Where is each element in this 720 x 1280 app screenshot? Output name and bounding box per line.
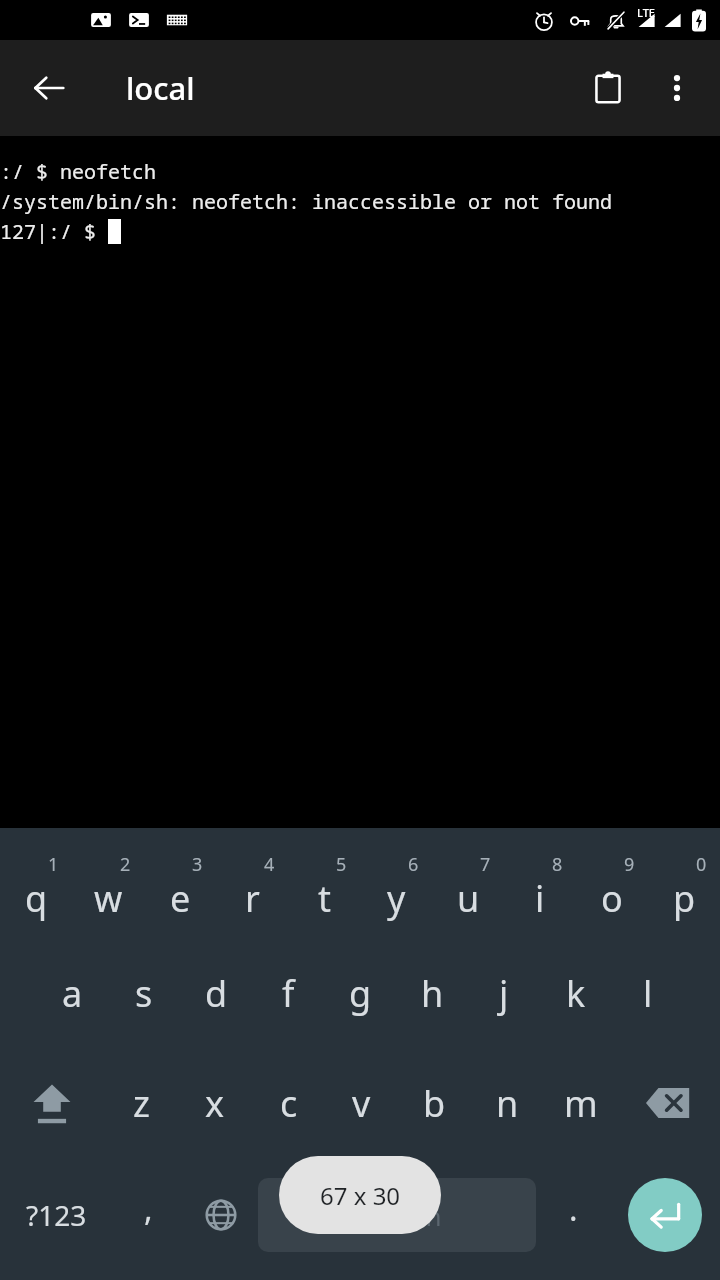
button[interactable]: ?123 bbox=[0, 1158, 112, 1272]
button[interactable]: z bbox=[104, 1048, 178, 1158]
button[interactable]: 7 bbox=[432, 842, 504, 938]
staticText: c bbox=[280, 1079, 298, 1128]
staticText: LTE bbox=[637, 5, 655, 20]
button[interactable]: More options bbox=[646, 57, 708, 119]
staticText: p bbox=[673, 874, 696, 923]
staticText: t bbox=[318, 874, 331, 923]
staticText: k bbox=[566, 969, 586, 1018]
staticText: y bbox=[387, 874, 406, 923]
button[interactable]: 3 bbox=[144, 842, 216, 938]
button[interactable]: 5 bbox=[288, 842, 360, 938]
staticText: v bbox=[352, 1079, 371, 1128]
staticText: a bbox=[62, 969, 83, 1018]
button[interactable]: English bbox=[258, 1178, 536, 1252]
staticText: n bbox=[496, 1079, 519, 1128]
button[interactable]: Shift bbox=[0, 1048, 104, 1158]
button[interactable]: c bbox=[252, 1048, 325, 1158]
button[interactable]: 9 bbox=[576, 842, 648, 938]
button[interactable]: Change language bbox=[184, 1158, 258, 1272]
button[interactable]: j bbox=[468, 938, 540, 1048]
staticText: m bbox=[564, 1079, 598, 1128]
button[interactable]: 2 bbox=[72, 842, 144, 938]
staticText: 127|:/ $ bbox=[0, 218, 108, 245]
staticText: 8 bbox=[552, 852, 563, 877]
staticText: o bbox=[601, 874, 623, 923]
staticText: 3 bbox=[192, 852, 203, 877]
button[interactable]: 1 bbox=[0, 842, 72, 938]
button[interactable]: . bbox=[536, 1158, 610, 1272]
staticText: r bbox=[245, 874, 260, 923]
button[interactable]: v bbox=[325, 1048, 398, 1158]
button[interactable]: m bbox=[544, 1048, 617, 1158]
staticText: h bbox=[421, 969, 444, 1018]
staticText: . bbox=[569, 1187, 578, 1231]
staticText: , bbox=[144, 1187, 153, 1231]
button[interactable]: 0 bbox=[648, 842, 720, 938]
button[interactable]: x bbox=[178, 1048, 252, 1158]
staticText: 1 bbox=[48, 852, 59, 877]
staticText: u bbox=[457, 874, 480, 923]
staticText: f bbox=[282, 969, 295, 1018]
button[interactable]: 8 bbox=[504, 842, 576, 938]
staticText: 7 bbox=[480, 852, 491, 877]
button[interactable]: h bbox=[396, 938, 468, 1048]
button[interactable]: s bbox=[108, 938, 180, 1048]
button[interactable]: l bbox=[612, 938, 684, 1048]
button[interactable]: k bbox=[540, 938, 612, 1048]
staticText: q bbox=[25, 874, 48, 923]
button[interactable]: g bbox=[324, 938, 396, 1048]
button[interactable]: Enter bbox=[610, 1158, 720, 1272]
staticText: l bbox=[643, 969, 653, 1018]
staticText: z bbox=[133, 1079, 150, 1128]
staticText: s bbox=[135, 969, 153, 1018]
button[interactable]: Back bbox=[18, 57, 80, 119]
staticText: 6 bbox=[408, 852, 419, 877]
staticText: x bbox=[205, 1079, 225, 1128]
staticText: 4 bbox=[264, 852, 275, 877]
button[interactable]: n bbox=[471, 1048, 544, 1158]
staticText: 2 bbox=[120, 852, 131, 877]
staticText: 0 bbox=[696, 852, 707, 877]
button[interactable]: Paste from clipboard bbox=[576, 56, 640, 120]
staticText: i bbox=[535, 874, 545, 923]
staticText: e bbox=[170, 874, 191, 923]
button[interactable]: 6 bbox=[360, 842, 432, 938]
staticText: 9 bbox=[624, 852, 635, 877]
staticText: 5 bbox=[336, 852, 347, 877]
button[interactable]: Backspace bbox=[617, 1048, 720, 1158]
button[interactable]: 4 bbox=[216, 842, 288, 938]
staticText: b bbox=[423, 1079, 446, 1128]
staticText: /system/bin/sh: neofetch: inaccessible o… bbox=[0, 188, 612, 215]
staticText: 67 x 30 bbox=[320, 1179, 401, 1212]
button[interactable]: a bbox=[36, 938, 108, 1048]
button[interactable]: , bbox=[112, 1158, 184, 1272]
button[interactable]: f bbox=[252, 938, 324, 1048]
staticText: English bbox=[353, 1198, 442, 1233]
staticText: ?123 bbox=[26, 1196, 87, 1234]
staticText: local bbox=[126, 67, 195, 109]
button[interactable]: b bbox=[398, 1048, 471, 1158]
staticText: j bbox=[499, 969, 509, 1018]
staticText: d bbox=[205, 969, 228, 1018]
staticText: w bbox=[94, 874, 123, 923]
staticText: :/ $ neofetch bbox=[0, 158, 156, 185]
button[interactable]: d bbox=[180, 938, 252, 1048]
staticText: g bbox=[349, 969, 372, 1018]
